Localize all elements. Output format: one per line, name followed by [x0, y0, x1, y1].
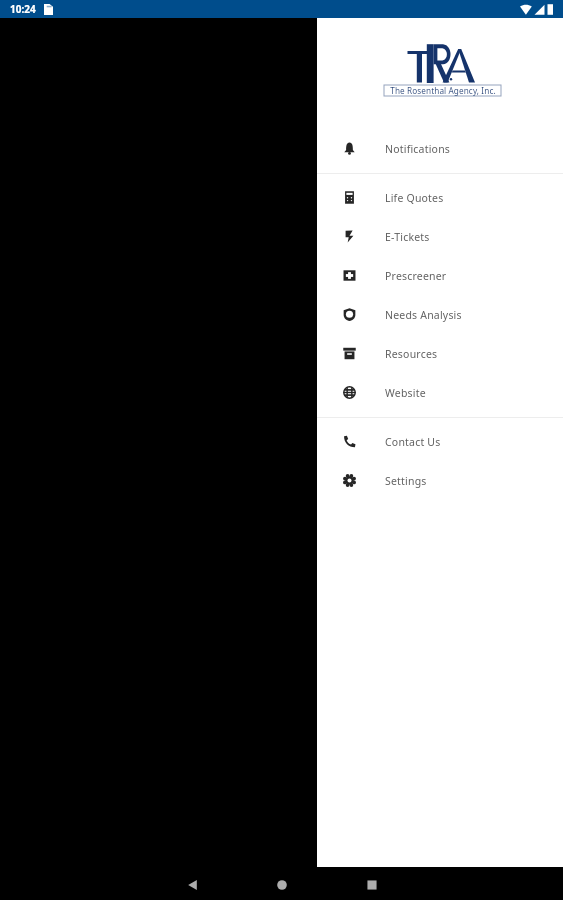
button[interactable]: Website	[317, 373, 563, 412]
button[interactable]: Resources	[317, 334, 563, 373]
button[interactable]: Home	[269, 872, 295, 898]
button[interactable]: Settings	[317, 461, 563, 500]
button[interactable]: Contact Us	[317, 422, 563, 461]
button[interactable]: Needs Analysis	[317, 295, 563, 334]
staticText: Website	[385, 386, 426, 400]
button[interactable]: Prescreener	[317, 256, 563, 295]
staticText: E-Tickets	[385, 230, 430, 244]
button[interactable]: Life Quotes	[317, 178, 563, 217]
button[interactable]: E-Tickets	[317, 217, 563, 256]
button[interactable]: Notifications	[317, 129, 563, 168]
button[interactable]: Recent apps	[359, 872, 385, 898]
staticText: Resources	[385, 347, 438, 361]
staticText: Prescreener	[385, 269, 447, 283]
staticText: Contact Us	[385, 435, 441, 449]
staticText: 10:24	[10, 2, 36, 16]
button[interactable]: Back	[180, 872, 206, 898]
staticText: Life Quotes	[385, 191, 444, 205]
staticText: Settings	[385, 474, 427, 488]
staticText: The Rosenthal Agency, Inc.	[390, 85, 496, 96]
staticText: Notifications	[385, 142, 451, 156]
staticText: Needs Analysis	[385, 308, 462, 322]
